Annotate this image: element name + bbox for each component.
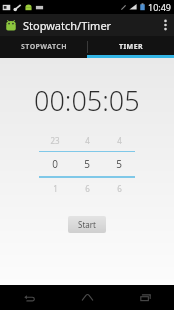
button[interactable]: 5 xyxy=(71,157,103,171)
staticText: 6 xyxy=(85,183,90,194)
button[interactable]: More options xyxy=(156,14,174,36)
staticText: STOPWATCH xyxy=(21,42,67,52)
button[interactable]: 6 xyxy=(71,183,103,194)
staticText: 4 xyxy=(117,135,122,146)
staticText: Stopwatch/Timer xyxy=(23,18,112,33)
button[interactable]: 1 xyxy=(39,183,71,194)
button[interactable]: Home xyxy=(58,285,116,310)
button[interactable]: 6 xyxy=(103,183,135,194)
staticText: 1 xyxy=(53,183,58,194)
staticText: Start xyxy=(78,219,96,230)
button[interactable]: 23 xyxy=(39,135,71,146)
staticText: 10:49 xyxy=(148,1,172,13)
button[interactable]: Back xyxy=(0,285,58,310)
button[interactable]: Recent apps xyxy=(116,285,174,310)
staticText: 5 xyxy=(84,157,90,171)
staticText: 5 xyxy=(116,157,122,171)
button[interactable]: TIMER xyxy=(87,36,174,58)
button[interactable]: Start xyxy=(68,216,106,233)
staticText: 00:05:05 xyxy=(34,82,140,119)
button[interactable]: 0 xyxy=(39,157,71,171)
button[interactable]: 5 xyxy=(103,157,135,171)
staticText: 23 xyxy=(50,135,60,146)
staticText: TIMER xyxy=(119,42,143,52)
button[interactable]: 4 xyxy=(71,135,103,146)
staticText: 6 xyxy=(117,183,122,194)
button[interactable]: STOPWATCH xyxy=(0,36,87,58)
staticText: 4 xyxy=(85,135,90,146)
staticText: 0 xyxy=(52,157,58,171)
button[interactable]: 4 xyxy=(103,135,135,146)
